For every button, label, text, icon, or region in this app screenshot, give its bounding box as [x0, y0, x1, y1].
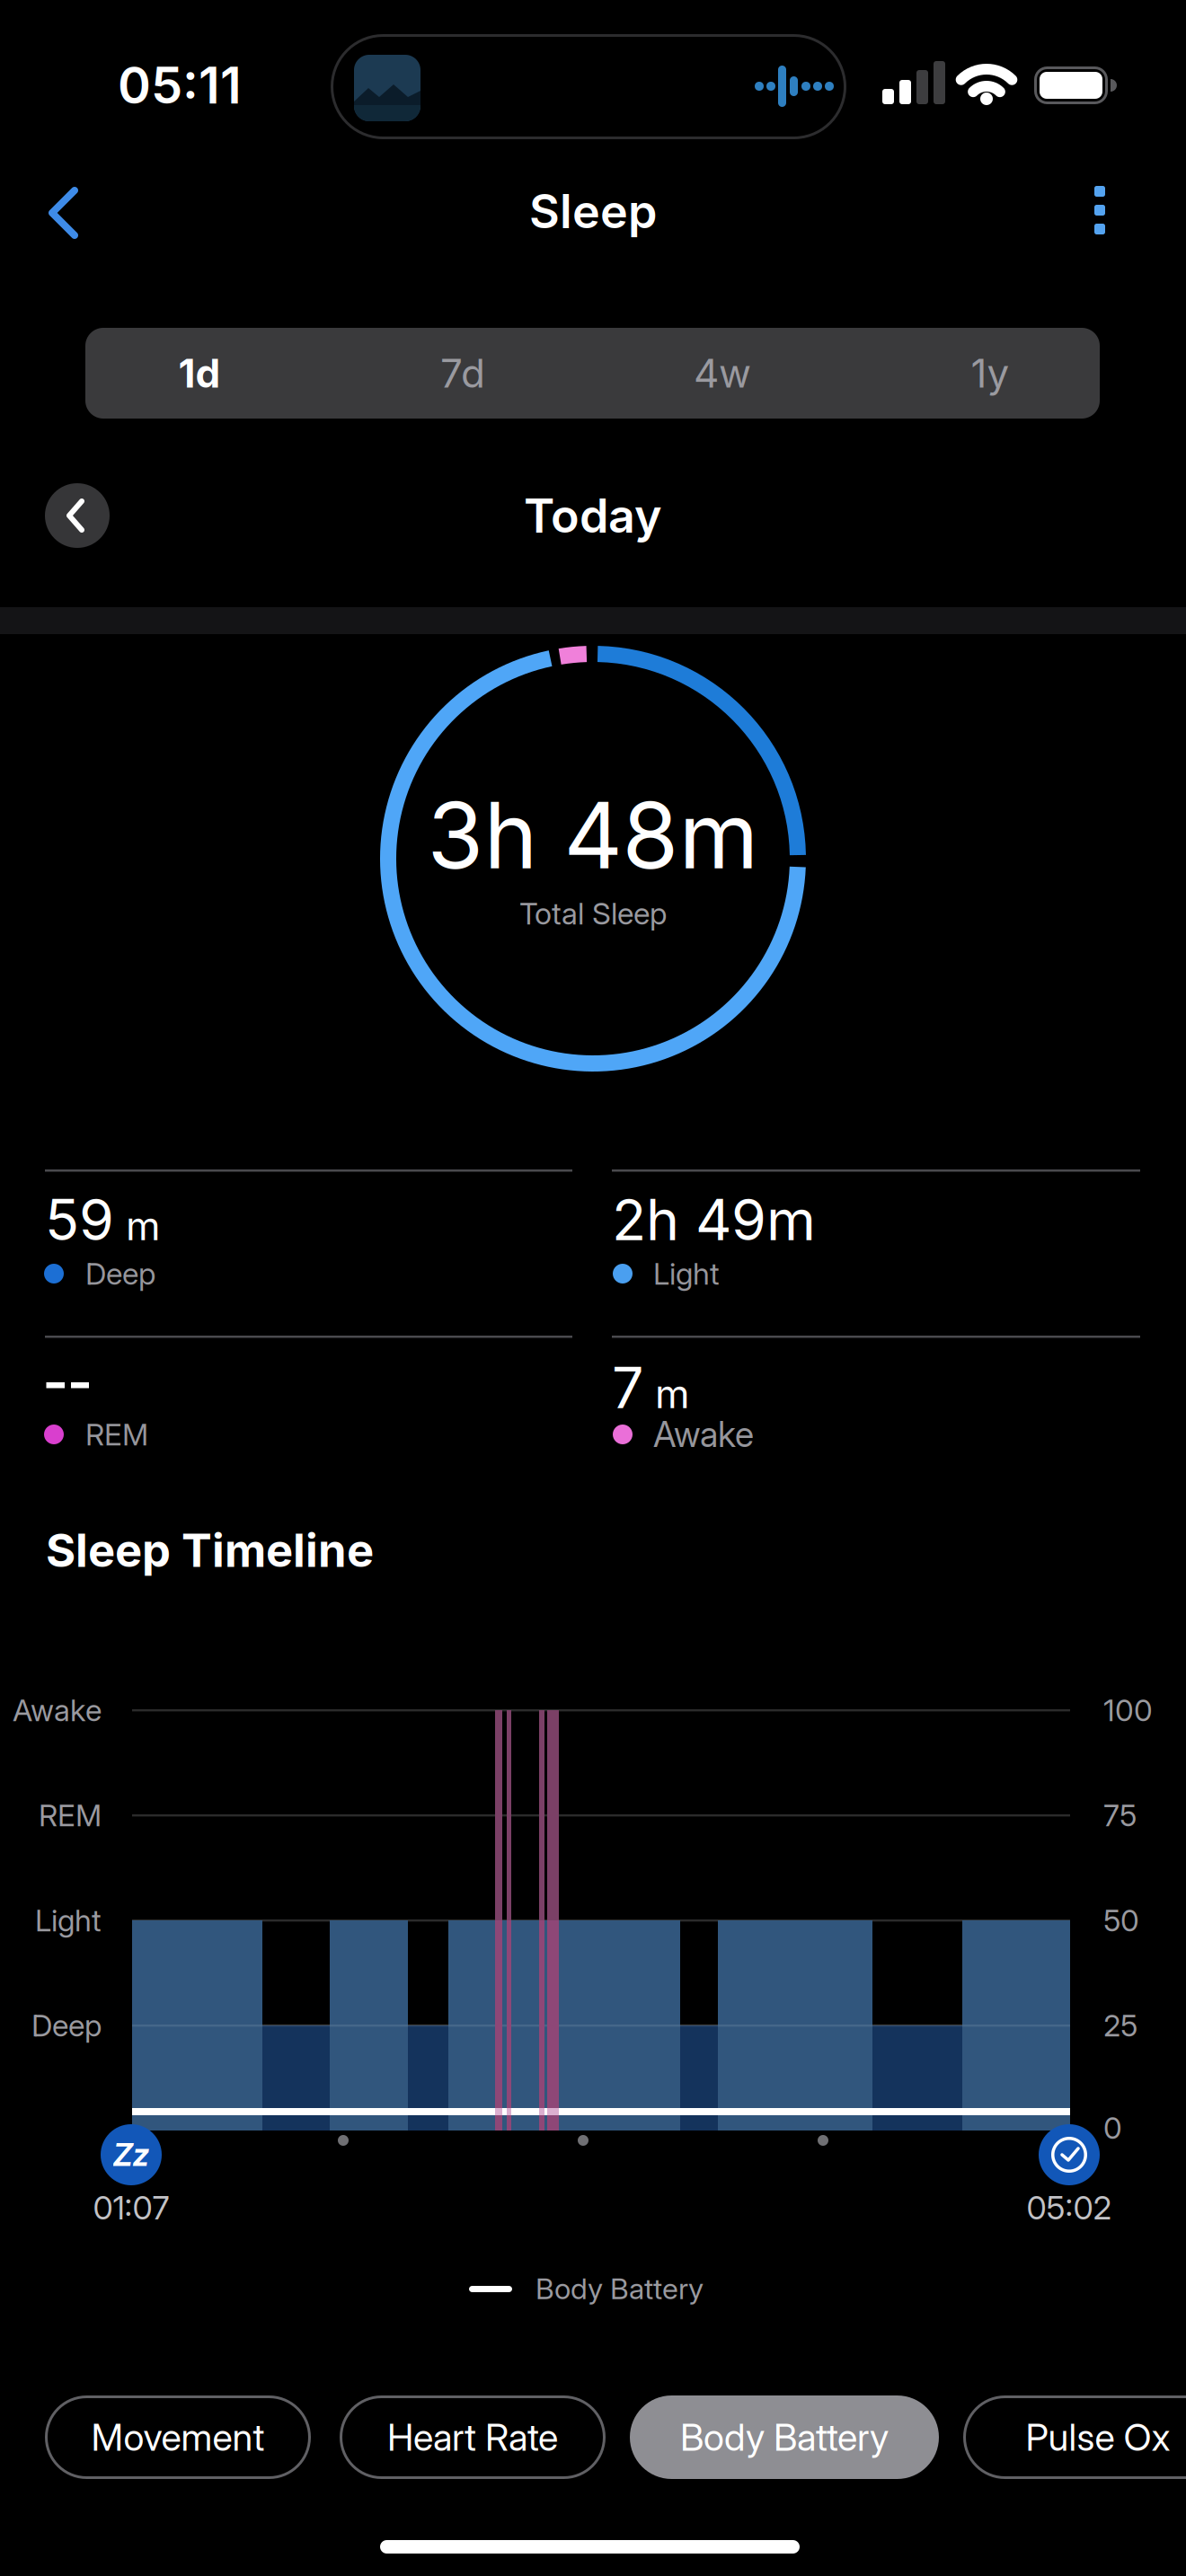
staticText: Total Sleep — [519, 896, 667, 931]
staticText: Zz — [113, 2136, 150, 2173]
staticText: 7d — [440, 350, 485, 396]
staticText: Deep — [85, 1256, 155, 1291]
staticText: 01:07 — [93, 2189, 169, 2227]
staticText: Light — [35, 1903, 102, 1938]
staticText: 1y — [971, 350, 1009, 396]
staticText: Heart Rate — [387, 2415, 558, 2459]
staticText: Sleep — [529, 183, 657, 239]
staticText: Awake — [13, 1692, 102, 1728]
button[interactable]: Movement — [45, 2395, 311, 2479]
staticText: 05:11 — [118, 56, 242, 115]
staticText: Deep — [31, 2008, 102, 2043]
staticText: Today — [524, 488, 662, 543]
staticText: REM — [85, 1417, 148, 1452]
staticText: Sleep Timeline — [46, 1523, 374, 1577]
staticText: Body Battery — [535, 2272, 704, 2306]
staticText: Light — [653, 1256, 720, 1291]
staticText: 7 — [612, 1354, 643, 1421]
staticText: 0 — [1103, 2110, 1122, 2145]
staticText: 100 — [1103, 1692, 1153, 1728]
button[interactable]: Heart Rate — [340, 2395, 606, 2479]
button[interactable]: Body Battery — [630, 2395, 939, 2479]
staticText: m — [126, 1202, 161, 1249]
staticText: 4w — [694, 350, 751, 396]
button[interactable]: Back — [48, 188, 78, 238]
staticText: 1d — [178, 350, 221, 396]
staticText: Pulse Ox — [1026, 2415, 1170, 2459]
button[interactable]: 4w — [592, 328, 853, 419]
button[interactable]: More options — [1080, 179, 1120, 242]
staticText: 25 — [1103, 2008, 1137, 2043]
staticText: 05:02 — [1027, 2189, 1112, 2227]
staticText: Awake — [653, 1414, 754, 1455]
staticText: Movement — [91, 2415, 265, 2459]
staticText: 3h 48m — [427, 782, 759, 889]
button[interactable]: Sleep start — [101, 2124, 162, 2185]
staticText: 59 — [45, 1187, 114, 1253]
staticText: 75 — [1103, 1798, 1137, 1833]
button[interactable]: Previous day — [45, 483, 110, 548]
button[interactable]: Pulse Ox — [963, 2395, 1186, 2479]
staticText: REM — [39, 1798, 102, 1833]
button[interactable]: 7d — [332, 328, 593, 419]
staticText: 50 — [1103, 1903, 1139, 1938]
staticText: m — [655, 1370, 690, 1417]
button[interactable]: 1d — [69, 328, 330, 419]
button[interactable]: Sleep end — [1039, 2124, 1100, 2185]
staticText: 2h 49m — [612, 1187, 816, 1253]
staticText: Body Battery — [680, 2415, 889, 2459]
button[interactable]: 1y — [860, 328, 1120, 419]
